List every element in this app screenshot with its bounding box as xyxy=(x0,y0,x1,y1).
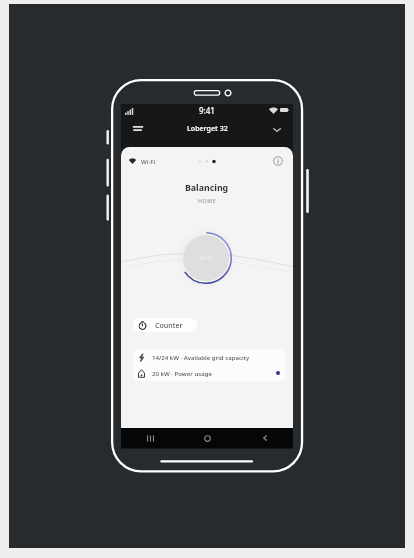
button[interactable]: Home xyxy=(179,428,236,448)
button[interactable]: 20 kW · Power usage xyxy=(133,365,286,381)
button[interactable]: Info xyxy=(271,155,284,167)
staticText: 9:41 xyxy=(199,105,215,116)
button[interactable]: Balance gauge 64 percent xyxy=(174,226,238,290)
staticText: Loberget 32 xyxy=(187,124,228,134)
staticText: HOME xyxy=(198,197,217,204)
staticText: Counter xyxy=(155,320,183,330)
button[interactable]: Menu xyxy=(130,120,146,136)
staticText: 20 kW · Power usage xyxy=(152,369,212,377)
staticText: Wi-Fi xyxy=(141,157,156,165)
button[interactable]: Recent apps xyxy=(121,428,179,448)
button[interactable]: Counter xyxy=(133,318,197,332)
staticText: 64 % xyxy=(200,254,213,262)
button[interactable]: 14/24 kW · Available grid capacity xyxy=(133,349,286,365)
staticText: Balancing xyxy=(185,182,229,194)
button[interactable]: Back xyxy=(236,428,293,448)
staticText: 14/24 kW · Available grid capacity xyxy=(152,353,250,361)
button[interactable]: Expand xyxy=(269,122,285,138)
